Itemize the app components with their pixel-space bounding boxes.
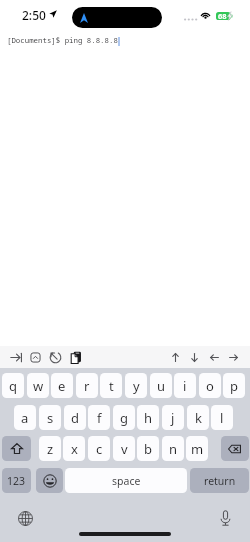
staticText: y [133, 377, 140, 395]
button[interactable]: r [76, 373, 98, 398]
button[interactable]: Arrow down [188, 351, 201, 364]
staticText: a [21, 409, 29, 427]
staticText: c [96, 440, 103, 458]
button[interactable]: 123 [2, 468, 31, 493]
button[interactable]: t [100, 373, 122, 398]
staticText: space [112, 474, 141, 488]
button[interactable]: g [113, 405, 135, 430]
button[interactable]: Backspace [221, 436, 249, 461]
button[interactable]: Dictation [216, 509, 234, 527]
staticText: f [97, 409, 102, 427]
staticText: s [47, 409, 54, 427]
button[interactable]: c [88, 436, 110, 461]
button[interactable]: l [211, 405, 233, 430]
button[interactable]: e [51, 373, 73, 398]
button[interactable]: y [125, 373, 147, 398]
staticText: p [230, 377, 238, 395]
staticText: [Documents]$ ping 8.8.8.8 [7, 35, 118, 45]
staticText: u [157, 377, 166, 395]
staticText: i [183, 377, 187, 395]
button[interactable]: Arrow left [208, 351, 221, 364]
button[interactable]: Shift [2, 436, 31, 461]
button[interactable]: b [137, 436, 159, 461]
staticText: 68 [218, 11, 227, 21]
button[interactable]: m [186, 436, 208, 461]
staticText: n [169, 440, 178, 458]
button[interactable]: x [63, 436, 85, 461]
button[interactable]: w [27, 373, 49, 398]
button[interactable]: History [49, 351, 62, 364]
staticText: l [220, 409, 224, 427]
button[interactable]: i [174, 373, 196, 398]
staticText: d [71, 409, 79, 427]
button[interactable]: p [223, 373, 245, 398]
button[interactable]: a [14, 405, 36, 430]
button[interactable]: Paste [69, 351, 82, 364]
button[interactable]: k [187, 405, 209, 430]
staticText: m [191, 440, 204, 458]
button[interactable]: v [113, 436, 135, 461]
staticText: t [109, 377, 114, 395]
button[interactable]: Emoji [36, 468, 63, 493]
staticText: return [204, 474, 236, 488]
button[interactable]: h [137, 405, 159, 430]
button[interactable]: Tab [10, 351, 23, 364]
button[interactable]: z [39, 436, 61, 461]
staticText: g [120, 409, 128, 427]
staticText: v [121, 440, 128, 458]
staticText: j [171, 409, 175, 427]
button[interactable]: Arrow up [169, 351, 182, 364]
button[interactable]: s [39, 405, 61, 430]
button[interactable]: d [64, 405, 86, 430]
staticText: h [144, 409, 153, 427]
button[interactable]: j [162, 405, 184, 430]
button[interactable]: u [150, 373, 172, 398]
button[interactable]: n [162, 436, 184, 461]
staticText: k [195, 409, 202, 427]
staticText: x [71, 440, 78, 458]
button[interactable]: f [88, 405, 110, 430]
staticText: 2:50 [22, 7, 46, 23]
staticText: w [33, 377, 44, 395]
staticText: z [47, 440, 54, 458]
staticText: o [206, 377, 214, 395]
button[interactable]: return [190, 468, 249, 493]
staticText: b [144, 440, 152, 458]
button[interactable]: o [199, 373, 221, 398]
button[interactable]: Change keyboard [16, 509, 34, 527]
button[interactable]: Arrow right [227, 351, 240, 364]
button[interactable]: space [65, 468, 187, 493]
button[interactable]: q [2, 373, 24, 398]
staticText: r [84, 377, 90, 395]
button[interactable]: Control [29, 351, 42, 364]
staticText: q [9, 377, 17, 395]
staticText: e [58, 377, 66, 395]
staticText: 123 [7, 474, 26, 488]
